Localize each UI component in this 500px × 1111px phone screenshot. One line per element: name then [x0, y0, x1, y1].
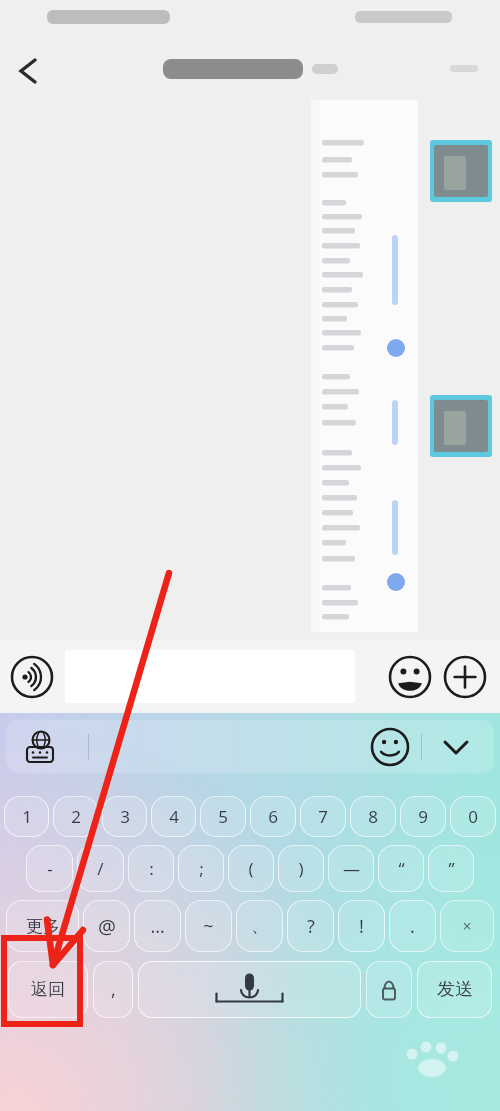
staticText: ): [298, 857, 304, 880]
staticText: 返回: [31, 979, 65, 1000]
button[interactable]: -: [26, 845, 73, 892]
staticText: ,: [111, 977, 116, 1002]
button[interactable]: Voice input: [10, 655, 54, 699]
button[interactable]: !: [338, 900, 385, 952]
staticText: —: [343, 857, 360, 880]
button[interactable]: Hide keyboard: [434, 725, 478, 769]
button[interactable]: Shift: [366, 961, 412, 1018]
button[interactable]: ?: [287, 900, 334, 952]
button[interactable]: (: [228, 845, 274, 892]
button[interactable]: ): [278, 845, 324, 892]
button[interactable]: /: [77, 845, 124, 892]
button[interactable]: @: [83, 900, 130, 952]
staticText: 2: [71, 805, 81, 828]
staticText: @: [98, 913, 116, 940]
button[interactable]: 9: [400, 796, 446, 837]
button[interactable]: 8: [350, 796, 396, 837]
staticText: 8: [368, 805, 378, 828]
button[interactable]: Emoji keyboard: [370, 727, 410, 767]
button[interactable]: 0: [450, 796, 496, 837]
staticText: …: [150, 914, 165, 939]
staticText: 发送: [437, 978, 473, 1001]
button[interactable]: Emoji: [388, 655, 432, 699]
button[interactable]: ”: [428, 845, 474, 892]
staticText: ?: [307, 914, 315, 939]
staticText: “: [398, 857, 405, 880]
staticText: 3: [120, 805, 130, 828]
staticText: 1: [22, 805, 32, 828]
button[interactable]: :: [128, 845, 174, 892]
staticText: ~: [203, 914, 214, 939]
button[interactable]: 3: [102, 796, 147, 837]
button[interactable]: 更多: [6, 900, 79, 952]
staticText: -: [47, 857, 53, 880]
staticText: ;: [199, 857, 204, 880]
staticText: 、: [251, 915, 269, 938]
button[interactable]: …: [134, 900, 181, 952]
button[interactable]: —: [328, 845, 374, 892]
button[interactable]: 发送: [417, 961, 492, 1018]
button[interactable]: More options: [443, 655, 487, 699]
staticText: (: [248, 857, 254, 880]
button[interactable]: Switch input method: [20, 727, 60, 767]
button[interactable]: 6: [250, 796, 296, 837]
button[interactable]: 2: [53, 796, 98, 837]
button[interactable]: ×: [440, 900, 494, 952]
staticText: ”: [448, 857, 455, 880]
button[interactable]: 、: [236, 900, 283, 952]
button[interactable]: [65, 650, 355, 703]
staticText: 6: [268, 805, 278, 828]
button[interactable]: 7: [300, 796, 346, 837]
button[interactable]: .: [389, 900, 436, 952]
staticText: 7: [318, 805, 328, 828]
button[interactable]: Space and voice input: [138, 961, 361, 1018]
button[interactable]: 1: [4, 796, 49, 837]
button[interactable]: ~: [185, 900, 232, 952]
staticText: :: [149, 857, 154, 880]
button[interactable]: 5: [200, 796, 246, 837]
button[interactable]: ,: [93, 961, 133, 1018]
staticText: /: [97, 857, 104, 880]
staticText: .: [410, 914, 415, 939]
button[interactable]: “: [378, 845, 424, 892]
staticText: 4: [169, 805, 179, 828]
button[interactable]: ;: [178, 845, 224, 892]
staticText: 更多: [26, 916, 60, 937]
staticText: 0: [468, 805, 478, 828]
staticText: !: [359, 914, 364, 939]
staticText: 9: [418, 805, 428, 828]
button[interactable]: 4: [151, 796, 196, 837]
staticText: 5: [218, 805, 228, 828]
staticText: ×: [462, 915, 472, 937]
button[interactable]: 返回: [8, 961, 88, 1018]
